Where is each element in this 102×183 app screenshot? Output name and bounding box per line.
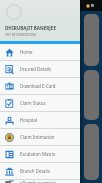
staticText: Insured Details [20, 66, 52, 72]
button[interactable]: eReimbursement [0, 180, 80, 183]
button[interactable]: Hospital [0, 112, 80, 129]
staticText: Download E-Card [20, 83, 56, 89]
staticText: 701181286000004 [5, 32, 36, 37]
staticText: Escalation Matrix [20, 151, 56, 157]
staticText: DHIRUBAJIT BANERJEE [5, 25, 56, 31]
button[interactable]: Branch Details [0, 163, 80, 180]
button[interactable]: Insured Details [0, 61, 80, 78]
staticText: Claim Status [20, 100, 46, 106]
button[interactable]: Escalation Matrix [0, 146, 80, 163]
staticText: Home [20, 49, 33, 55]
button[interactable]: Download E-Card [0, 78, 80, 95]
button[interactable]: Home [0, 44, 80, 61]
staticText: Branch Details [20, 168, 50, 174]
staticText: eReimbursement [20, 180, 56, 183]
button[interactable]: Claim Intimation [0, 129, 80, 146]
staticText: Claim Intimation [20, 134, 55, 140]
button[interactable]: Claim Status [0, 95, 80, 112]
staticText: Hospital [20, 117, 38, 123]
